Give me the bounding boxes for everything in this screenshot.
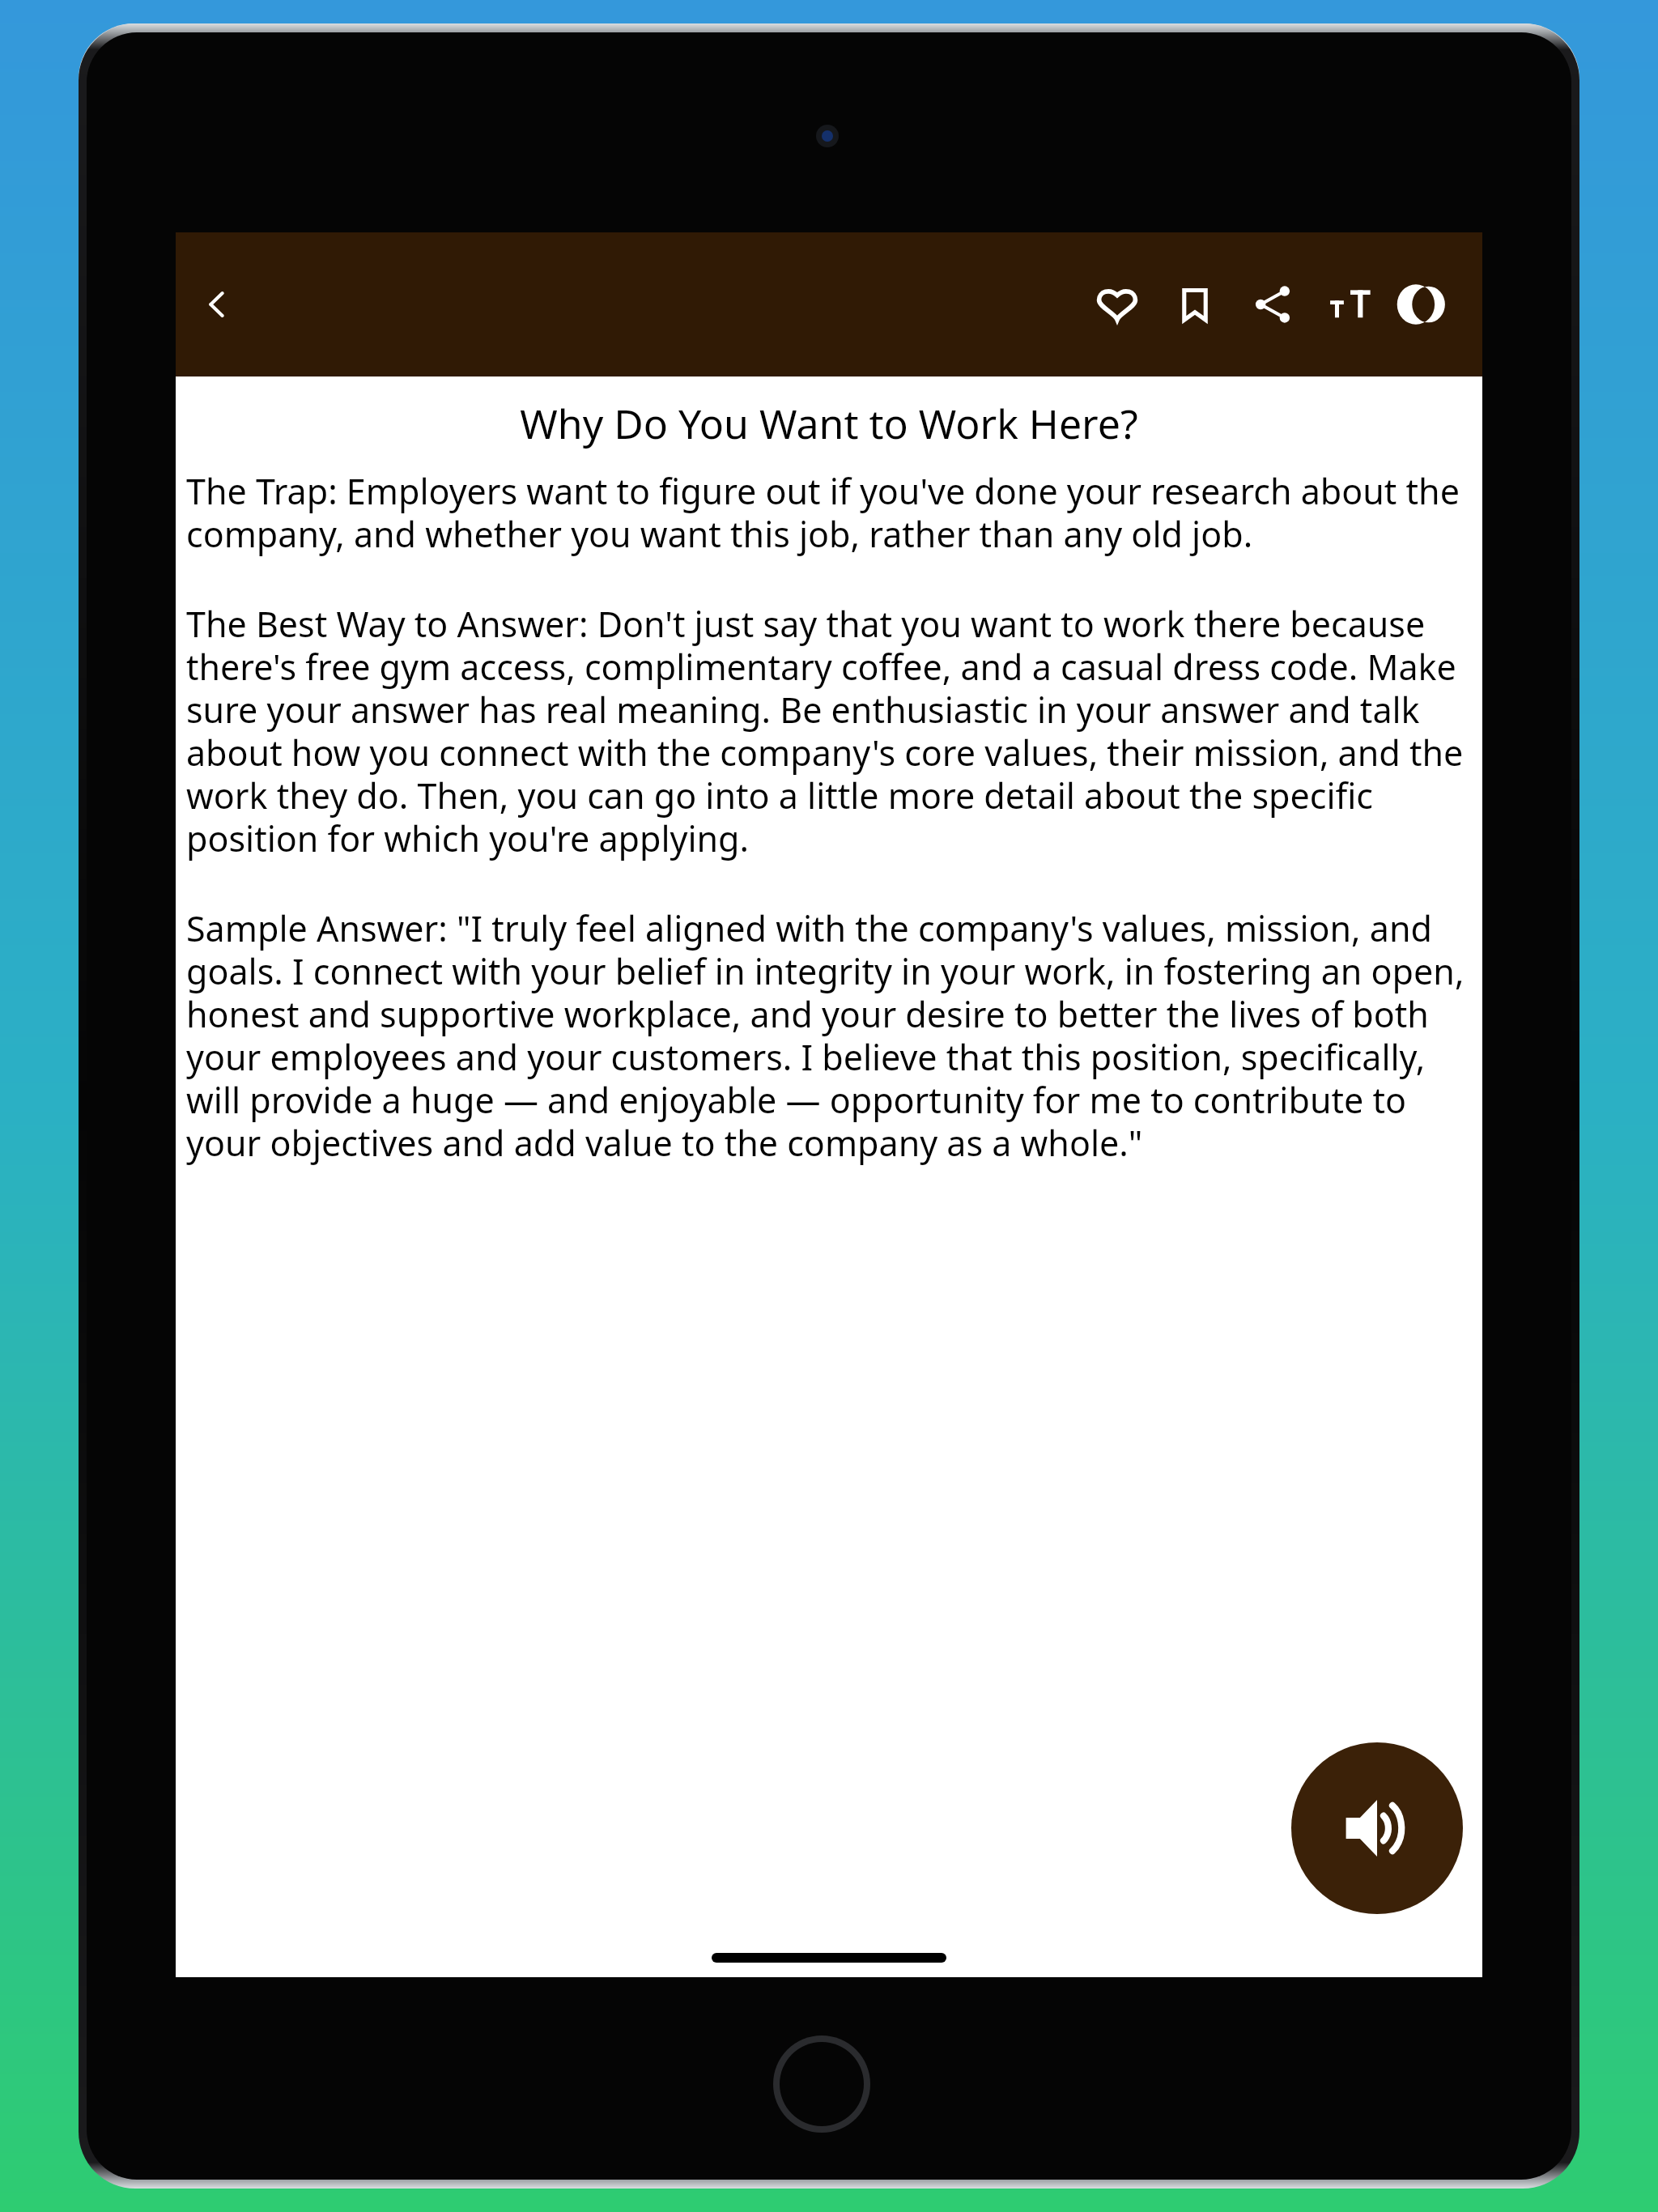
button[interactable]: Night mode (1403, 279, 1453, 330)
button[interactable]: Text size (1325, 279, 1375, 330)
staticText: Sample Answer: "I truly feel aligned wit… (186, 904, 1472, 1166)
button[interactable]: Share (1248, 279, 1298, 330)
button[interactable]: Bookmark (1170, 279, 1220, 330)
button[interactable]: Back (187, 274, 247, 334)
staticText: The Trap: Employers want to figure out i… (186, 467, 1472, 557)
staticText: Why Do You Want to Work Here? (186, 396, 1472, 451)
button[interactable]: Read aloud (1291, 1742, 1463, 1914)
button[interactable]: Favorite (1092, 279, 1142, 330)
staticText: The Best Way to Answer: Don't just say t… (186, 600, 1472, 861)
